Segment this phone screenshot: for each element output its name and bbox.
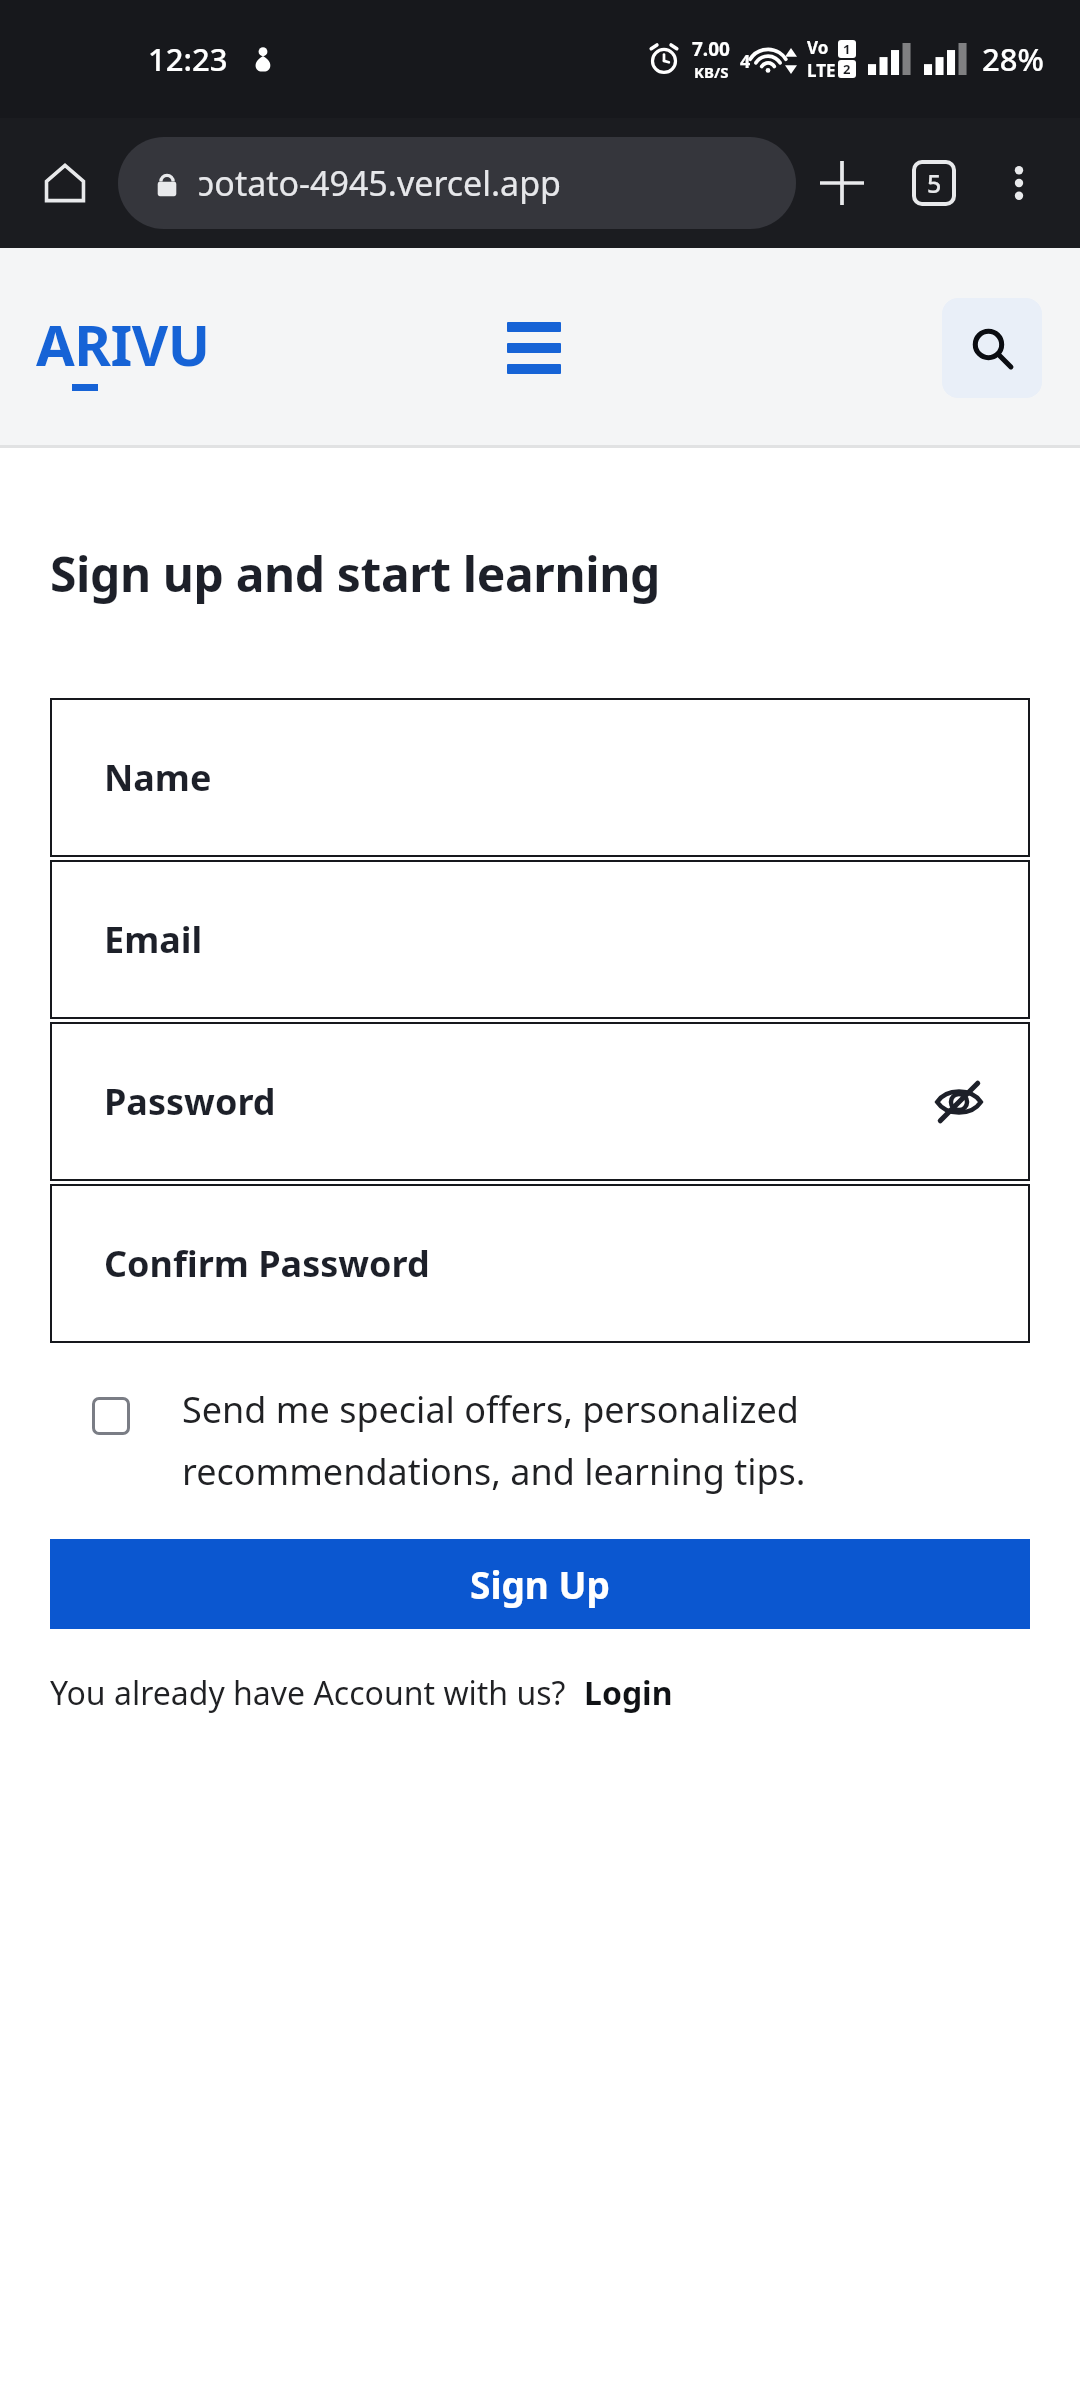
staticText: Sign Up [470, 1559, 610, 1609]
staticText: 4 [740, 49, 751, 74]
button[interactable]: Sign Up [50, 1539, 1030, 1629]
staticText: KB/S [694, 62, 729, 82]
staticText: Vo [807, 36, 829, 59]
button[interactable]: Name [50, 698, 1030, 857]
button[interactable]: Home [22, 140, 108, 226]
staticText: Send me special offers, personalized rec… [182, 1385, 1030, 1495]
staticText: 5 [927, 166, 942, 200]
button[interactable]: Password [50, 1022, 1030, 1181]
staticText: Login [584, 1671, 673, 1715]
staticText: You already have Account with us? [50, 1671, 566, 1715]
button[interactable]: Email [50, 860, 1030, 1019]
staticText: 28% [982, 38, 1044, 80]
staticText: 1 [843, 40, 851, 58]
button[interactable]: Menu [486, 300, 582, 396]
button[interactable]: Send me special offers, personalized rec… [52, 1385, 1030, 1495]
staticText: 12:23 [148, 38, 228, 80]
button[interactable]: Login [584, 1671, 673, 1715]
staticText: LTE [807, 59, 836, 82]
button[interactable]: ARIVU [36, 306, 210, 391]
staticText: Confirm Password [104, 1239, 430, 1288]
button[interactable]: Tabs [888, 137, 980, 229]
button[interactable]: Search [942, 298, 1042, 398]
staticText: Name [104, 753, 212, 802]
button[interactable]: Show password [924, 1067, 994, 1137]
staticText: ɔotato-4945.vercel.app [198, 160, 562, 206]
button[interactable]: Confirm Password [50, 1184, 1030, 1343]
staticText: 2 [843, 60, 851, 78]
button[interactable]: ɔotato-4945.vercel.app [118, 137, 796, 229]
staticText: Email [104, 915, 203, 964]
staticText: ARIVU [36, 306, 210, 382]
button[interactable]: More options [980, 144, 1058, 222]
button[interactable]: New tab [796, 137, 888, 229]
staticText: 7.00 [692, 36, 730, 62]
staticText: Password [104, 1077, 276, 1126]
staticText: Sign up and start learning [50, 541, 660, 606]
